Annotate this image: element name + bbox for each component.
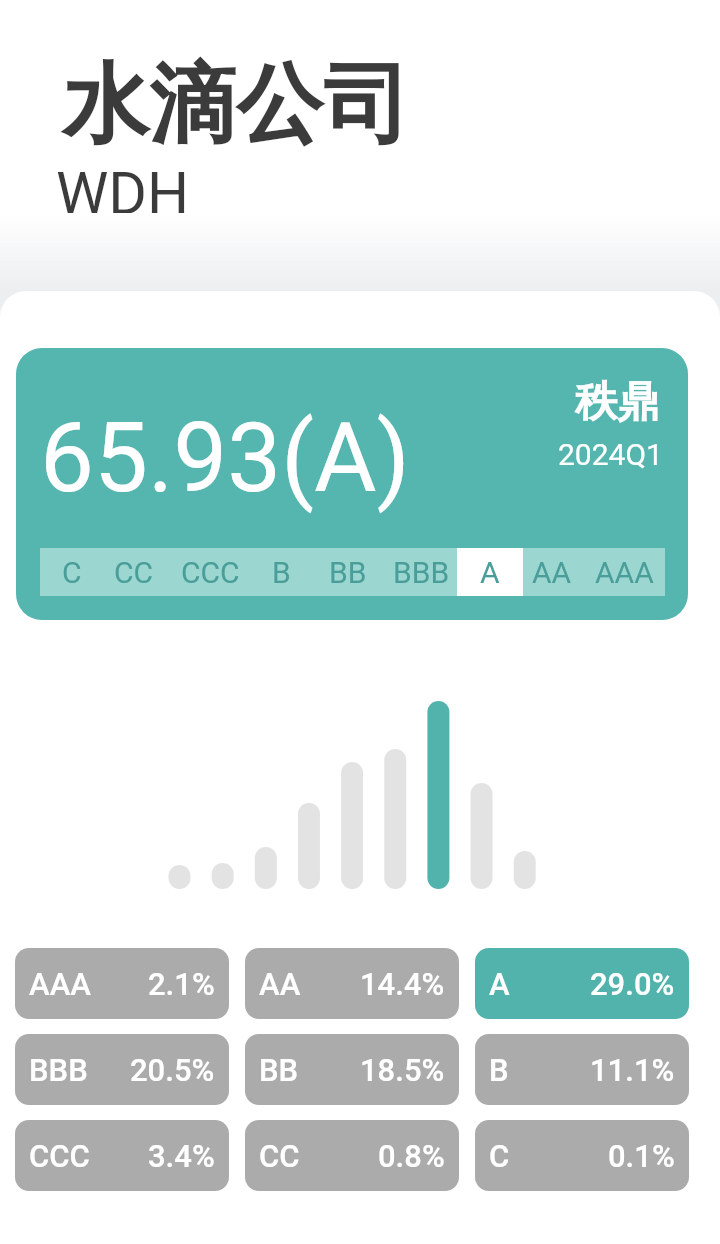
staticText: 18.5% <box>360 1052 445 1088</box>
staticText: A <box>489 966 510 1002</box>
button[interactable]: A <box>457 548 523 596</box>
button[interactable]: AA <box>245 948 459 1019</box>
button[interactable]: BB <box>245 1034 459 1105</box>
button[interactable]: AAA <box>579 548 669 596</box>
button[interactable]: B <box>475 1034 689 1105</box>
button[interactable]: AAA <box>15 948 229 1019</box>
staticText: C <box>489 1138 510 1174</box>
staticText: B <box>272 555 291 590</box>
staticText: CCC <box>29 1138 90 1174</box>
button[interactable]: BB <box>303 548 393 596</box>
staticText: 2.1% <box>148 966 215 1002</box>
staticText: 20.5% <box>130 1052 215 1088</box>
staticText: 14.4% <box>360 966 445 1002</box>
button[interactable]: 秩鼎 <box>16 348 688 620</box>
staticText: BBB <box>393 555 450 590</box>
staticText: 2024Q1 <box>558 437 663 472</box>
staticText: 秩鼎 <box>575 376 659 429</box>
button[interactable]: B <box>236 548 326 596</box>
staticText: 3.4% <box>148 1138 215 1174</box>
button[interactable]: BBB <box>376 548 466 596</box>
staticText: CC <box>259 1138 300 1174</box>
staticText: 水滴公司 <box>62 50 410 160</box>
staticText: 65.93(A) <box>40 402 411 515</box>
button[interactable]: AA <box>507 548 597 596</box>
button[interactable]: C <box>475 1120 689 1191</box>
staticText: WDH <box>56 159 190 219</box>
button[interactable]: CCC <box>165 548 255 596</box>
staticText: 11.1% <box>590 1052 675 1088</box>
staticText: 0.8% <box>378 1138 445 1174</box>
staticText: BBB <box>29 1052 88 1088</box>
staticText: AA <box>532 555 572 590</box>
staticText: C <box>62 555 82 590</box>
staticText: A <box>480 555 500 590</box>
staticText: B <box>489 1052 509 1088</box>
button[interactable]: C <box>27 548 117 596</box>
staticText: 29.0% <box>590 966 675 1002</box>
staticText: 0.1% <box>608 1138 675 1174</box>
button[interactable]: A <box>475 948 689 1019</box>
staticText: BB <box>329 555 367 590</box>
staticText: AAA <box>29 966 91 1002</box>
staticText: CCC <box>181 555 240 590</box>
button[interactable]: CCC <box>15 1120 229 1191</box>
button[interactable]: BBB <box>15 1034 229 1105</box>
button[interactable]: CC <box>89 548 179 596</box>
button[interactable]: CC <box>245 1120 459 1191</box>
staticText: BB <box>259 1052 299 1088</box>
staticText: AAA <box>595 555 654 590</box>
staticText: CC <box>114 555 154 590</box>
staticText: AA <box>259 966 301 1002</box>
